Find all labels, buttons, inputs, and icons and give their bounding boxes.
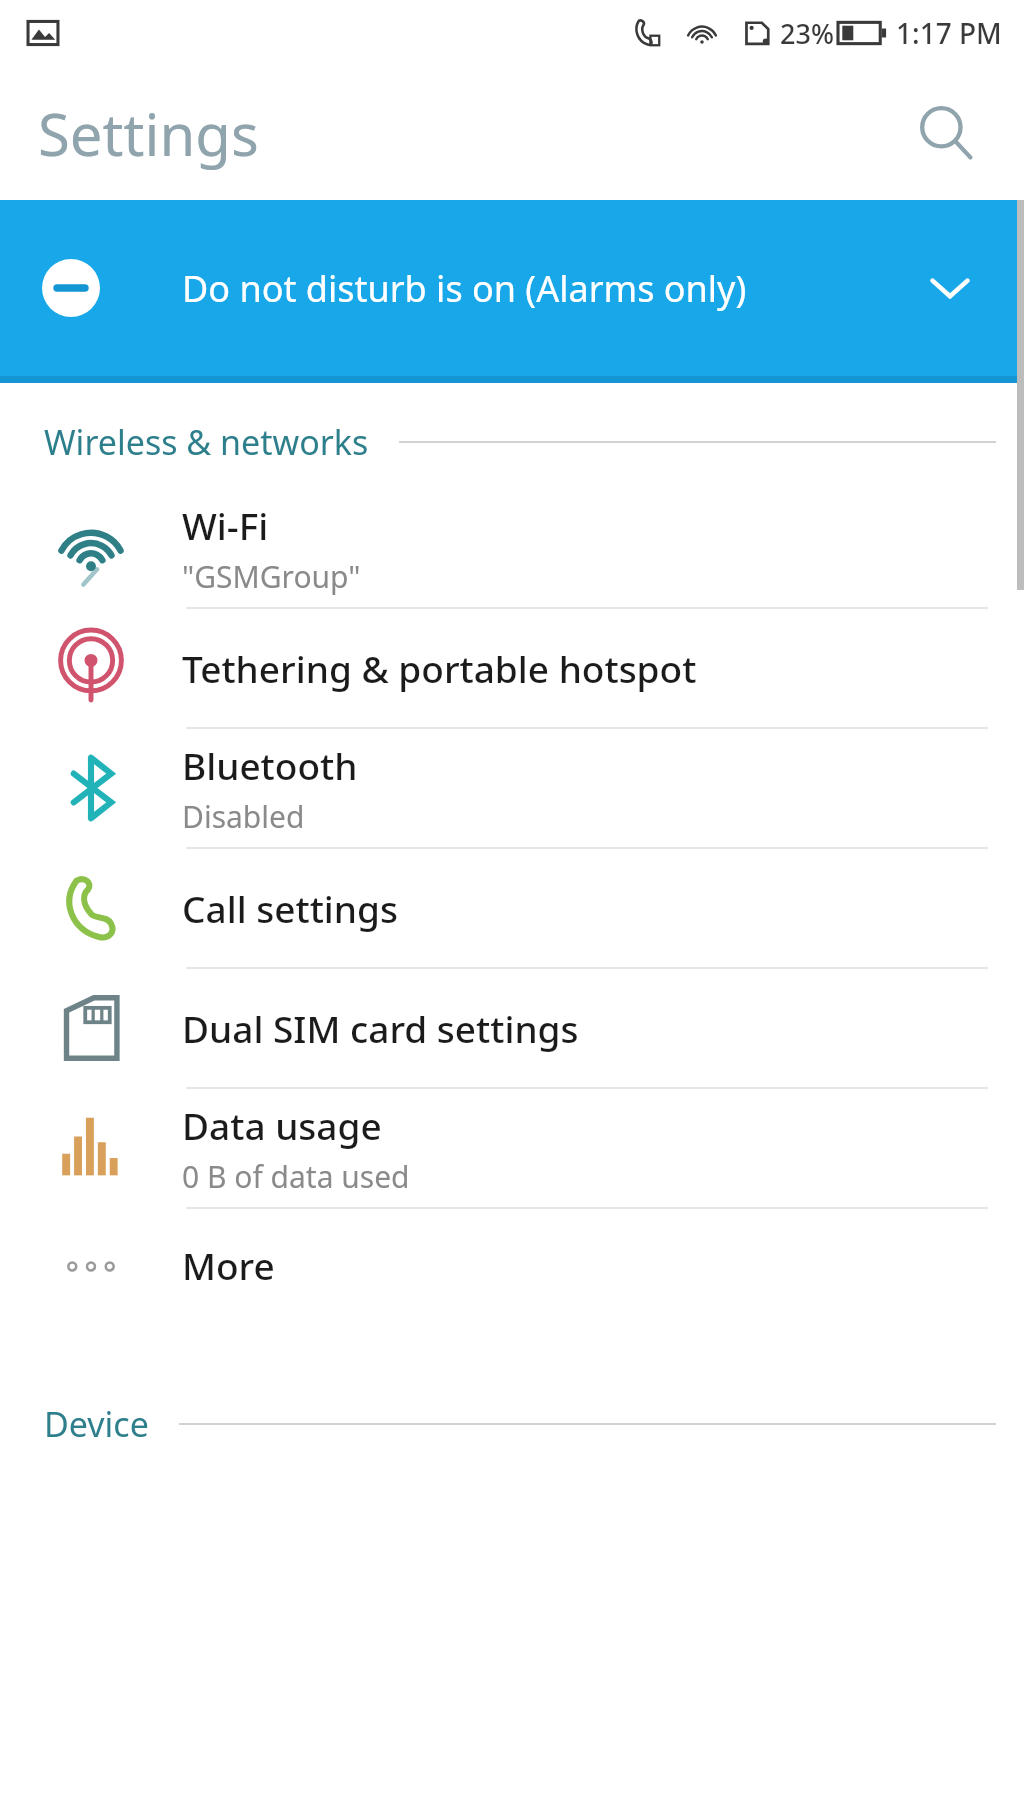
staticText: 23% bbox=[780, 15, 834, 52]
staticText: Tethering & portable hotspot bbox=[182, 643, 697, 693]
staticText: Disabled bbox=[182, 796, 305, 837]
staticText: Call settings bbox=[182, 883, 398, 933]
staticText: 1:17 PM bbox=[896, 14, 1002, 52]
staticText: Settings bbox=[38, 94, 259, 173]
button[interactable]: Bluetooth bbox=[0, 729, 1024, 847]
staticText: Wi-Fi bbox=[182, 500, 269, 550]
staticText: 0 B of data used bbox=[182, 1156, 410, 1197]
button[interactable]: Do not disturb is on (Alarms only) bbox=[0, 200, 1024, 376]
button[interactable]: Data usage bbox=[0, 1089, 1024, 1207]
staticText: Device bbox=[44, 1401, 149, 1447]
staticText: Do not disturb is on (Alarms only) bbox=[182, 264, 747, 313]
staticText: "GSMGroup" bbox=[182, 556, 361, 597]
staticText: More bbox=[182, 1240, 275, 1290]
staticText: Data usage bbox=[182, 1100, 382, 1150]
button[interactable]: Tethering & portable hotspot bbox=[0, 609, 1024, 727]
staticText: Bluetooth bbox=[182, 740, 358, 790]
button[interactable]: Call settings bbox=[0, 849, 1024, 967]
button[interactable]: Search bbox=[898, 85, 994, 181]
button[interactable]: Dual SIM card settings bbox=[0, 969, 1024, 1087]
button[interactable]: More bbox=[0, 1209, 1024, 1321]
staticText: Dual SIM card settings bbox=[182, 1003, 579, 1053]
button[interactable]: Expand bbox=[914, 252, 986, 324]
staticText: Wireless & networks bbox=[44, 419, 369, 465]
button[interactable]: Wi-Fi bbox=[0, 489, 1024, 607]
